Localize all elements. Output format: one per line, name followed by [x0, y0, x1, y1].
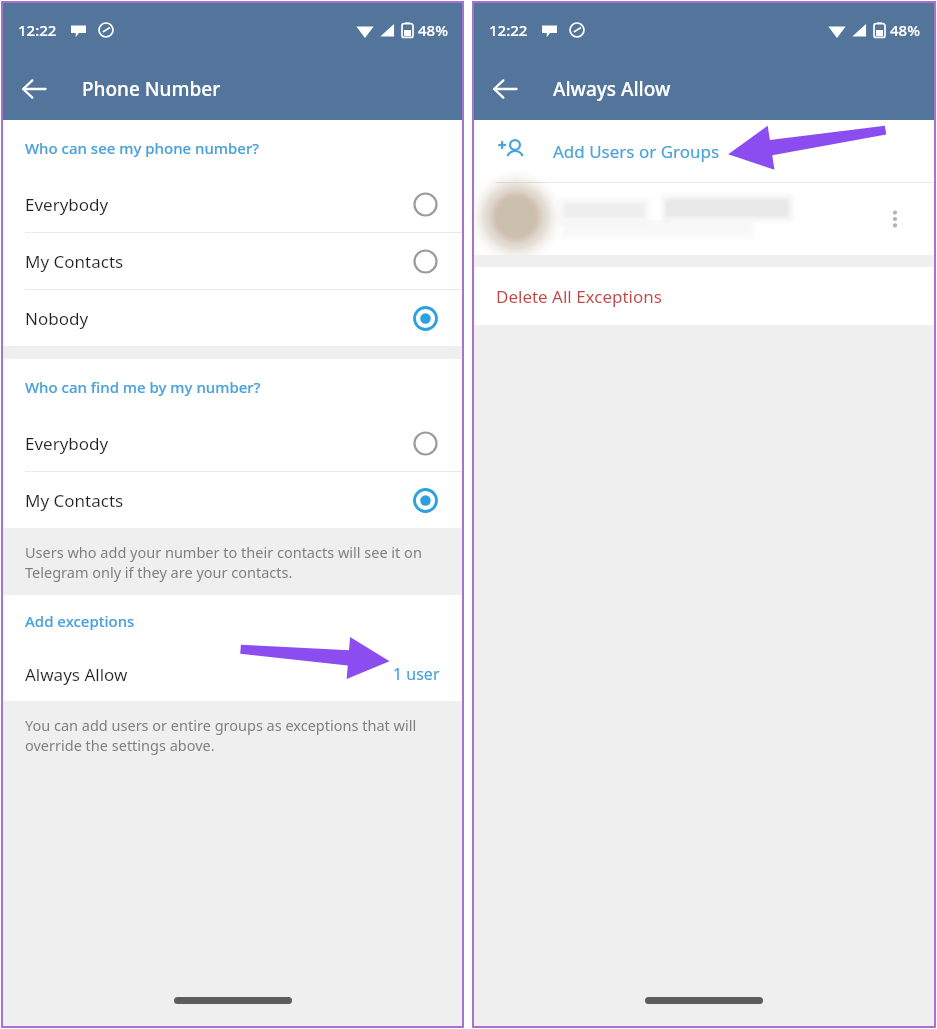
staticText: Add Users or Groups	[553, 140, 720, 163]
staticText: Add exceptions	[25, 611, 135, 631]
staticText: 48%	[890, 20, 920, 40]
button[interactable]: Delete All Exceptions	[472, 267, 936, 325]
button[interactable]: More options	[472, 183, 936, 255]
staticText: Users who add your number to their conta…	[25, 542, 444, 583]
button[interactable]: Add Users or Groups	[472, 120, 936, 182]
button[interactable]: Always Allow	[1, 647, 464, 701]
button[interactable]: My Contacts	[1, 472, 464, 528]
staticText: Everybody	[25, 193, 413, 216]
staticText: Nobody	[25, 307, 413, 330]
staticText: 12:22	[489, 20, 528, 40]
button[interactable]: Everybody	[1, 176, 464, 232]
button[interactable]: Nobody	[1, 290, 464, 346]
staticText: Phone Number	[82, 76, 221, 102]
staticText: Delete All Exceptions	[496, 285, 662, 308]
button[interactable]: More options	[878, 202, 912, 236]
staticText: 12:22	[18, 20, 57, 40]
button[interactable]: Back	[483, 67, 527, 111]
button[interactable]: My Contacts	[1, 233, 464, 289]
staticText: Always Allow	[553, 76, 671, 102]
staticText: Everybody	[25, 432, 413, 455]
staticText: You can add users or entire groups as ex…	[25, 715, 444, 756]
staticText: Who can find me by my number?	[25, 377, 261, 397]
staticText: Who can see my phone number?	[25, 138, 260, 158]
staticText: My Contacts	[25, 489, 413, 512]
button[interactable]: Everybody	[1, 415, 464, 471]
button[interactable]: Back	[12, 67, 56, 111]
staticText: 1 user	[393, 663, 440, 685]
staticText: Always Allow	[25, 663, 393, 686]
staticText: 48%	[418, 20, 448, 40]
staticText: My Contacts	[25, 250, 413, 273]
